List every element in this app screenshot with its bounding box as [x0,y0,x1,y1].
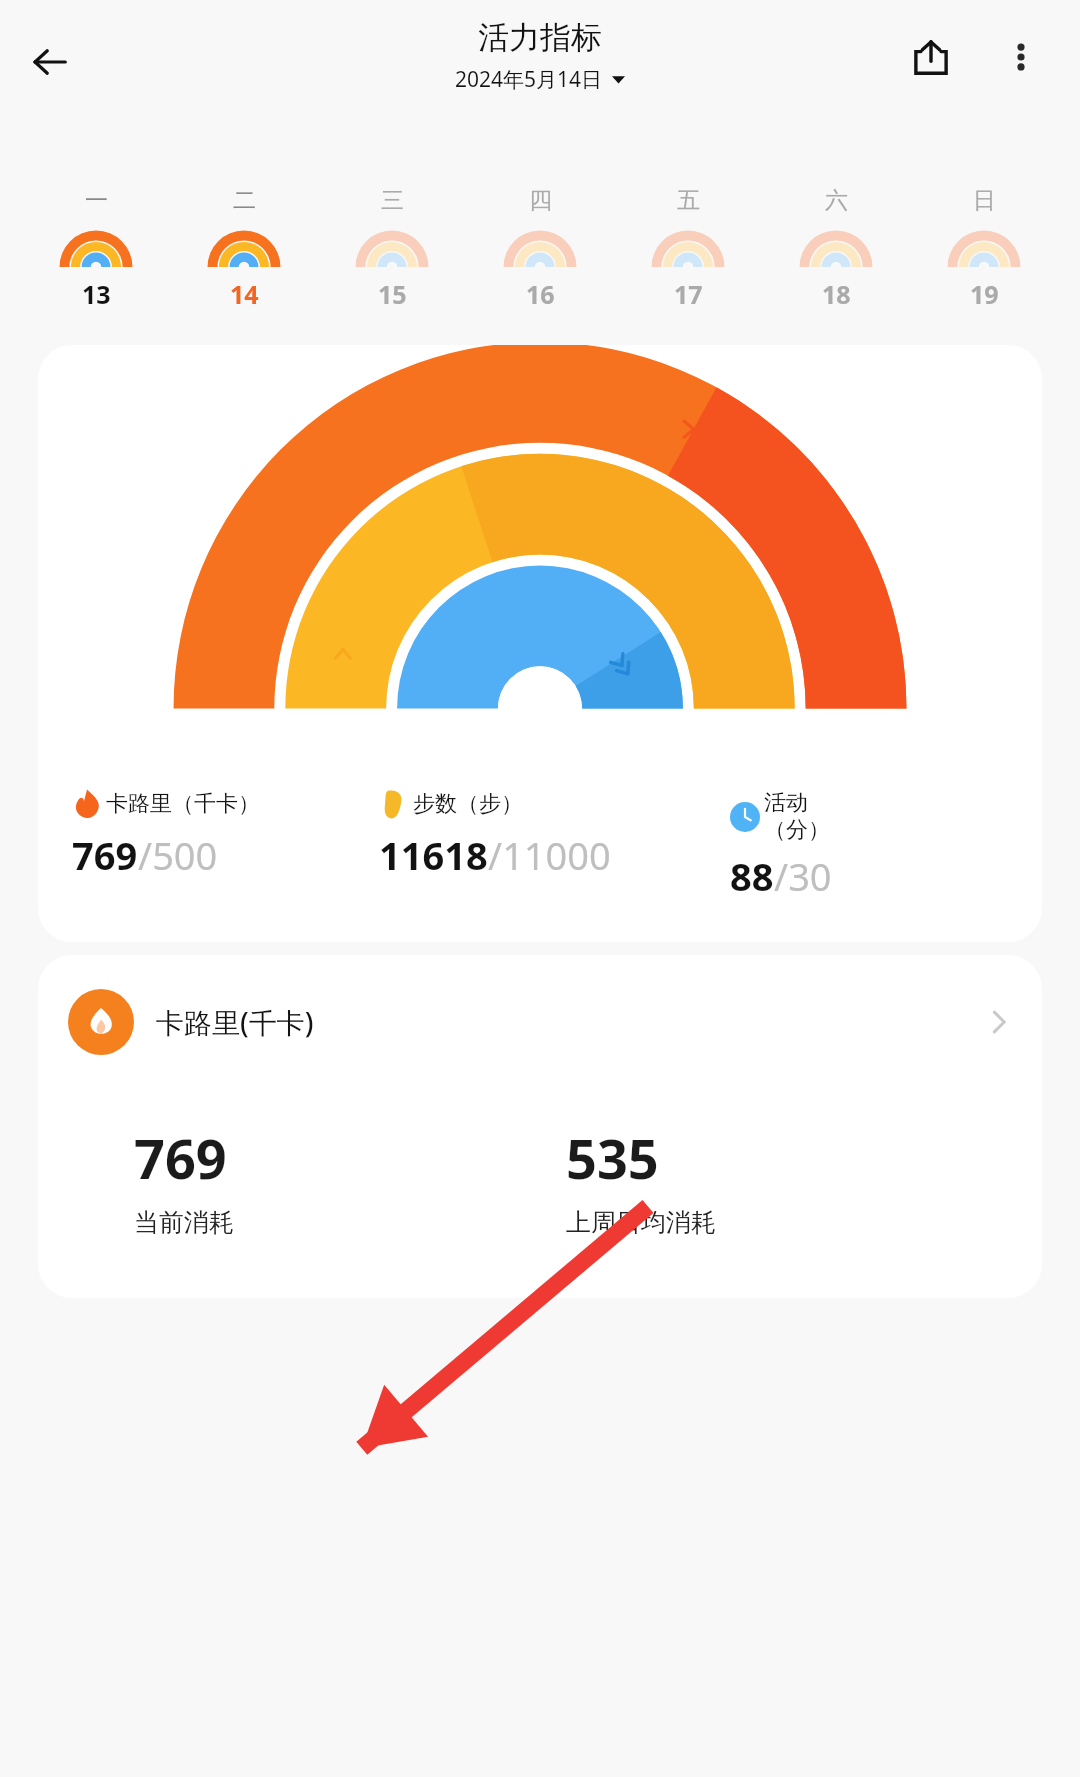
staticText: 当前消耗 [134,1207,234,1238]
button[interactable]: 四 [466,186,614,311]
button[interactable]: 五 [614,186,762,311]
staticText: 一 [85,186,108,215]
staticText: 步数（步） [413,790,523,818]
staticText: 535 [566,1121,659,1195]
staticText: 活力指标 [478,18,602,57]
staticText: 卡路里(千卡) [156,1003,314,1041]
staticText: /500 [138,829,218,881]
button[interactable]: 二 [170,186,318,311]
staticText: 四 [529,186,552,215]
staticText: 六 [825,186,848,215]
button[interactable]: 卡路里（千卡） [72,789,379,881]
button[interactable]: 三 [318,186,466,311]
staticText: 18 [822,277,851,311]
staticText: 活动 （分） [764,789,830,844]
staticText: /11000 [488,829,611,881]
button[interactable]: 日 [910,186,1058,311]
staticText: 11618 [379,829,488,881]
staticText: 三 [381,186,404,215]
staticText: 19 [970,277,999,311]
staticText: 上周日均消耗 [566,1207,716,1238]
staticText: 17 [674,277,703,311]
staticText: 卡路里（千卡） [106,790,260,818]
button[interactable]: 卡路里（千卡） [38,345,1042,942]
staticText: 769 [72,829,138,881]
button[interactable]: 一 [22,186,170,311]
button[interactable]: 活动 （分） [730,789,1008,902]
staticText: /30 [774,850,832,902]
button[interactable]: Back [18,30,82,94]
button[interactable]: 2024年5月14日 [455,65,625,94]
staticText: 15 [378,277,407,311]
staticText: 88 [730,850,774,902]
staticText: 16 [526,277,555,311]
staticText: 2024年5月14日 [455,65,603,94]
staticText: 769 [134,1121,227,1195]
staticText: 14 [230,277,259,311]
button[interactable]: 步数（步） [379,789,730,881]
button[interactable]: 六 [762,186,910,311]
staticText: 日 [973,186,996,215]
button[interactable]: More options [990,26,1052,88]
staticText: 二 [233,186,256,215]
button[interactable]: Share [900,26,962,88]
button[interactable]: 卡路里(千卡) [38,955,1042,1298]
staticText: 五 [677,186,700,215]
staticText: 13 [82,277,111,311]
